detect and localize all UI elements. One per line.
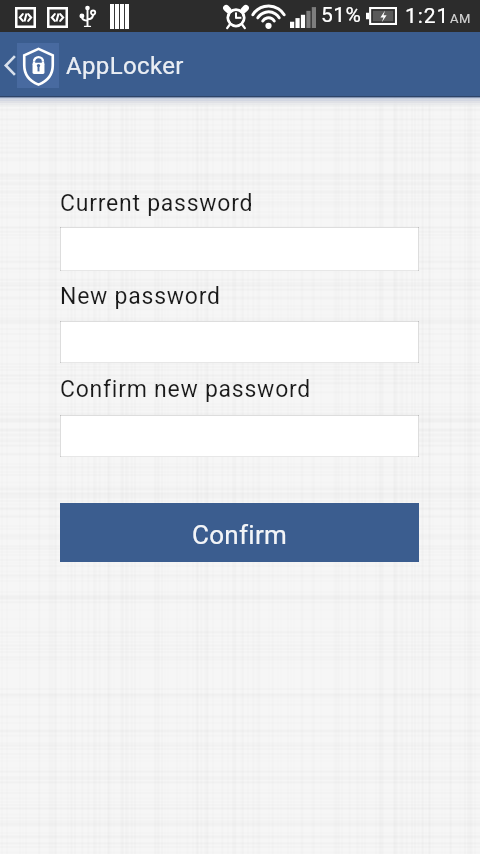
staticText: New password — [60, 283, 221, 310]
staticText: AM — [450, 11, 472, 26]
staticText: Confirm new password — [60, 376, 312, 403]
button[interactable] — [60, 415, 419, 457]
staticText: Current password — [60, 190, 254, 217]
button[interactable]: Confirm — [60, 503, 419, 562]
staticText: 1:21 — [405, 4, 450, 29]
button[interactable] — [60, 321, 419, 363]
staticText: 51% — [321, 3, 362, 28]
staticText: Confirm — [192, 520, 288, 550]
button[interactable]: AppLocker icon — [17, 43, 59, 88]
staticText: AppLocker — [66, 52, 184, 80]
button[interactable] — [60, 227, 419, 271]
button[interactable]: Back — [0, 32, 18, 96]
